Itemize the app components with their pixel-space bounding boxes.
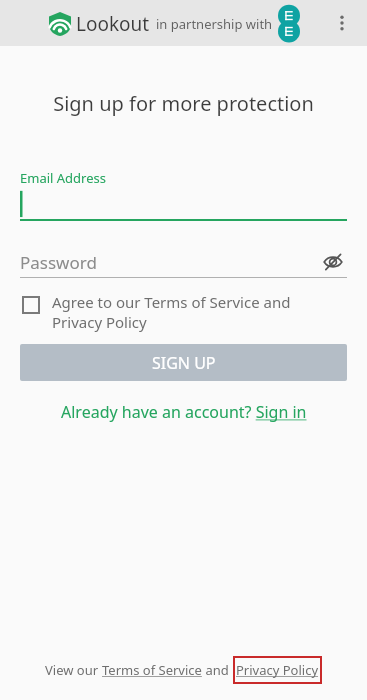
- button[interactable]: Agree to our Terms of Service and Privac…: [22, 292, 339, 332]
- staticText: and: [202, 661, 233, 679]
- staticText: Sign up for more protection: [0, 90, 367, 117]
- staticText: Privacy Policy: [236, 661, 319, 679]
- button[interactable]: Terms of Service: [102, 661, 202, 679]
- button[interactable]: SIGN UP: [20, 344, 347, 381]
- staticText: Agree to our Terms of Service and Privac…: [52, 292, 339, 332]
- button[interactable]: [20, 187, 347, 219]
- button[interactable]: Already have an account? Sign in: [57, 397, 311, 427]
- staticText: in partnership with: [156, 15, 273, 33]
- staticText: Already have an account? Sign in: [61, 401, 307, 423]
- button[interactable]: Privacy Policy: [236, 661, 319, 679]
- button[interactable]: More options: [324, 5, 360, 41]
- staticText: Lookout: [76, 11, 150, 37]
- staticText: Email Address: [20, 169, 106, 187]
- staticText: SIGN UP: [152, 352, 216, 374]
- staticText: Password: [20, 251, 97, 274]
- button[interactable]: Password: [20, 247, 347, 277]
- staticText: View our: [45, 661, 102, 679]
- button[interactable]: Show password: [319, 248, 347, 276]
- staticText: Terms of Service: [102, 661, 202, 679]
